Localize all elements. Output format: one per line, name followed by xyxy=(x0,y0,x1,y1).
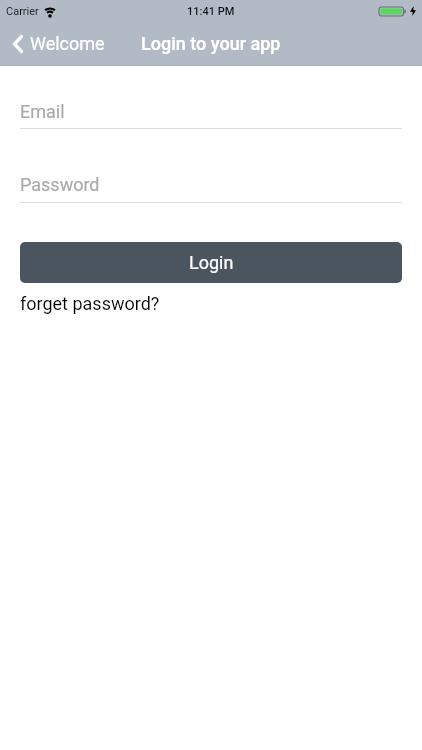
staticText: Welcome xyxy=(30,33,105,54)
button[interactable]: Welcome xyxy=(13,33,105,54)
staticText: Login to your app xyxy=(141,33,281,54)
button[interactable]: Login xyxy=(20,242,402,283)
staticText: 11:41 PM xyxy=(187,5,235,18)
staticText: Email xyxy=(20,101,65,122)
button[interactable]: forget password? xyxy=(20,293,160,314)
staticText: Login xyxy=(189,252,234,273)
staticText: Password xyxy=(20,174,100,195)
staticText: Carrier xyxy=(6,5,39,18)
